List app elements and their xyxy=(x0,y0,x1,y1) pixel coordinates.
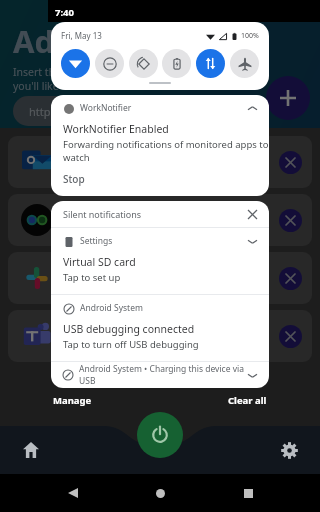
button[interactable]: Add app xyxy=(266,76,310,120)
staticText: Tap to set up xyxy=(63,271,121,284)
staticText: Manage xyxy=(53,394,92,407)
button[interactable]: Android System • Charging this device vi… xyxy=(51,362,269,388)
button[interactable]: Stop xyxy=(63,172,85,186)
staticText: Add xyxy=(13,20,74,62)
button[interactable]: https:// xyxy=(13,96,245,126)
button[interactable]: Remove Webex xyxy=(279,209,302,232)
staticText: com.Slack xyxy=(68,282,106,293)
staticText: Forwarding notifications of monitored ap… xyxy=(63,138,269,164)
button[interactable]: Remove Slack xyxy=(279,267,302,290)
button[interactable]: Microsoft Teams xyxy=(8,310,312,362)
button[interactable]: Settings xyxy=(51,228,269,254)
button[interactable]: Home xyxy=(14,433,48,467)
staticText: Virtual SD card xyxy=(63,255,136,269)
button[interactable]: WorkNotifier xyxy=(51,95,269,121)
staticText: Silent notifications xyxy=(63,208,248,220)
staticText: USB debugging connected xyxy=(63,322,195,336)
staticText: 7:40 xyxy=(55,6,74,19)
button[interactable]: Outlook xyxy=(8,136,312,188)
button[interactable]: Remove Outlook xyxy=(279,151,302,174)
button[interactable]: Home xyxy=(145,478,175,508)
staticText: com.microsoft.teams xyxy=(68,340,148,351)
button[interactable]: Power toggle xyxy=(137,412,183,458)
button[interactable]: Back xyxy=(58,478,88,508)
button[interactable]: Manage xyxy=(53,394,92,407)
button[interactable]: Airplane mode xyxy=(230,49,259,78)
button[interactable]: Do not disturb xyxy=(95,49,124,78)
staticText: Tap to turn off USB debugging xyxy=(63,338,199,351)
staticText: com.microsoft.office.outlook xyxy=(68,166,176,177)
button[interactable]: Mobile data xyxy=(196,49,225,78)
staticText: Settings xyxy=(80,235,248,247)
staticText: Android System xyxy=(80,302,257,314)
staticText: com.cisco.webex.meetings xyxy=(68,224,169,235)
button[interactable]: Android System xyxy=(51,295,269,321)
staticText: Webex xyxy=(68,206,110,224)
button[interactable]: Silent notifications xyxy=(51,201,269,227)
button[interactable]: Remove Microsoft Teams xyxy=(279,325,302,348)
staticText: Slack xyxy=(68,264,100,282)
staticText: Microsoft Teams xyxy=(68,322,171,340)
staticText: 100% xyxy=(241,31,259,41)
button[interactable]: Settings xyxy=(272,433,306,467)
staticText: https:// xyxy=(29,104,67,119)
staticText: Android System • Charging this device vi… xyxy=(79,363,248,387)
staticText: Clear all xyxy=(228,394,267,407)
button[interactable]: Recents xyxy=(233,478,263,508)
staticText: you'll like to receive xyxy=(13,79,110,93)
staticText: Outlook xyxy=(68,148,118,166)
staticText: WorkNotifier Enabled xyxy=(63,122,169,136)
button[interactable]: Auto rotate xyxy=(129,49,158,78)
button[interactable]: Slack xyxy=(8,252,312,304)
staticText: Insert the app you want notifications xyxy=(13,65,195,79)
button[interactable]: Battery saver xyxy=(162,49,191,78)
staticText: WorkNotifier xyxy=(80,102,248,114)
button[interactable]: Clear all xyxy=(228,394,267,407)
button[interactable]: Internet xyxy=(61,49,90,78)
button[interactable]: Webex xyxy=(8,194,312,246)
staticText: Fri, May 13 xyxy=(61,30,206,41)
staticText: Stop xyxy=(63,172,85,186)
